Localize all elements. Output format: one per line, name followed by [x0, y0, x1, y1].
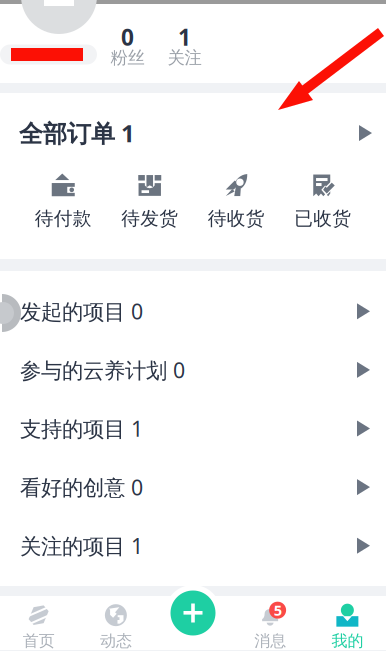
- staticText: 关注的项目 1: [20, 531, 143, 560]
- staticText: 1: [178, 22, 191, 52]
- staticText: 0: [121, 22, 134, 52]
- button[interactable]: 我的: [309, 596, 386, 650]
- button[interactable]: 已收货: [279, 172, 366, 230]
- button[interactable]: 首页: [0, 596, 77, 650]
- button[interactable]: 待收货: [193, 172, 279, 230]
- button[interactable]: 关注的项目 1: [0, 516, 386, 575]
- staticText: 已收货: [294, 207, 351, 230]
- button[interactable]: 5: [231, 596, 309, 650]
- button[interactable]: 支持的项目 1: [0, 399, 386, 458]
- staticText: 消息: [254, 631, 286, 651]
- staticText: 支持的项目 1: [20, 414, 143, 443]
- staticText: 全部订单 1: [19, 117, 135, 149]
- staticText: 参与的云养计划 0: [20, 356, 185, 384]
- button[interactable]: 参与的云养计划 0: [0, 341, 386, 399]
- staticText: 待发货: [121, 207, 178, 230]
- button[interactable]: 待付款: [20, 172, 106, 230]
- staticText: 看好的创意 0: [20, 473, 143, 501]
- button[interactable]: 全部订单 1: [0, 94, 386, 172]
- staticText: 发起的项目 0: [20, 297, 143, 325]
- button[interactable]: Create: [165, 585, 221, 641]
- button[interactable]: 待发货: [106, 172, 193, 230]
- staticText: 5: [274, 600, 282, 620]
- staticText: 首页: [23, 631, 55, 651]
- staticText: 粉丝: [110, 47, 144, 68]
- staticText: 关注: [167, 47, 201, 68]
- staticText: 待付款: [35, 207, 92, 230]
- staticText: 动态: [100, 631, 132, 651]
- staticText: 待收货: [208, 207, 265, 230]
- button[interactable]: 动态: [77, 596, 154, 650]
- staticText: 我的: [331, 631, 363, 651]
- button[interactable]: 看好的创意 0: [0, 458, 386, 516]
- button[interactable]: 发起的项目 0: [0, 282, 386, 341]
